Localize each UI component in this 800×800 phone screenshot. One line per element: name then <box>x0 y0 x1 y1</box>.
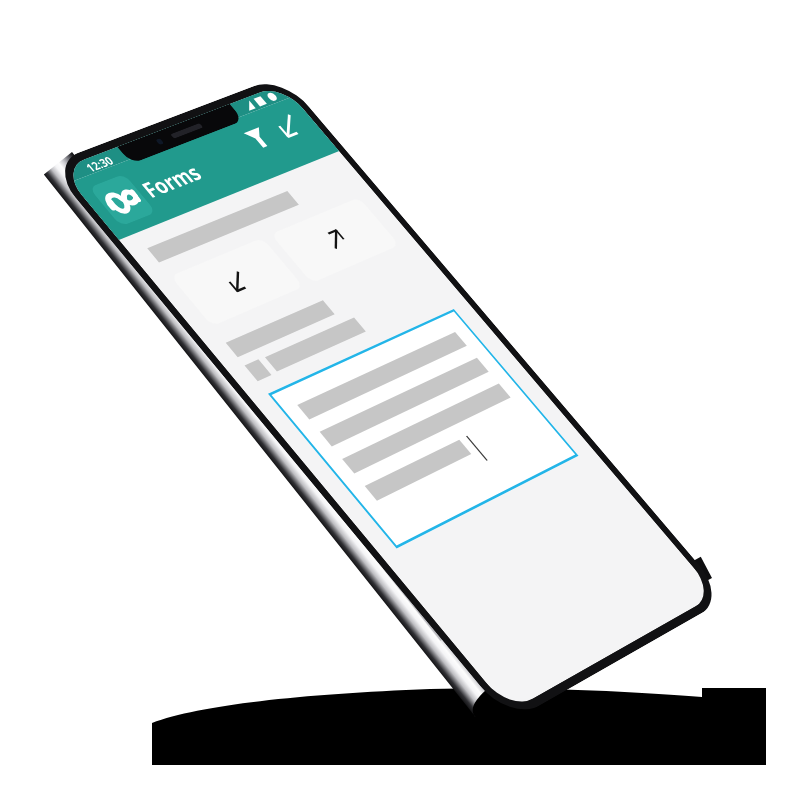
other: Forward <box>320 227 352 252</box>
button[interactable]: Forward <box>271 197 400 283</box>
staticText: 12:30 <box>82 153 117 175</box>
other: Back <box>221 268 254 294</box>
button[interactable]: Collapse <box>259 103 318 149</box>
button[interactable]: Filter <box>227 115 288 162</box>
button[interactable] <box>268 309 578 548</box>
staticText: Forms <box>135 158 208 204</box>
button[interactable]: Back <box>170 238 304 326</box>
